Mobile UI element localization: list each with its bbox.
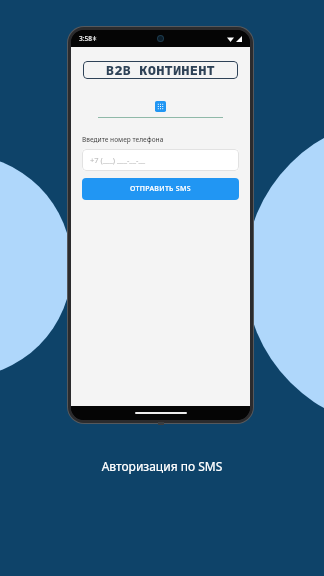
staticText: 3:58 [79, 34, 92, 43]
staticText: Авторизация по SMS [0, 458, 324, 474]
button[interactable]: Keypad [155, 101, 166, 112]
button[interactable]: Home [135, 412, 187, 414]
staticText: +7 (___) ___-__-__ [90, 155, 146, 165]
button[interactable]: ОТПРАВИТЬ SMS [82, 178, 239, 200]
button[interactable]: +7 (___) ___-__-__ [82, 149, 239, 171]
staticText: Введите номер телефона [82, 135, 164, 144]
staticText: ОТПРАВИТЬ SMS [130, 184, 191, 194]
staticText: B2B КОНТИНЕНТ [106, 61, 216, 79]
button[interactable]: B2B КОНТИНЕНТ [83, 61, 238, 79]
